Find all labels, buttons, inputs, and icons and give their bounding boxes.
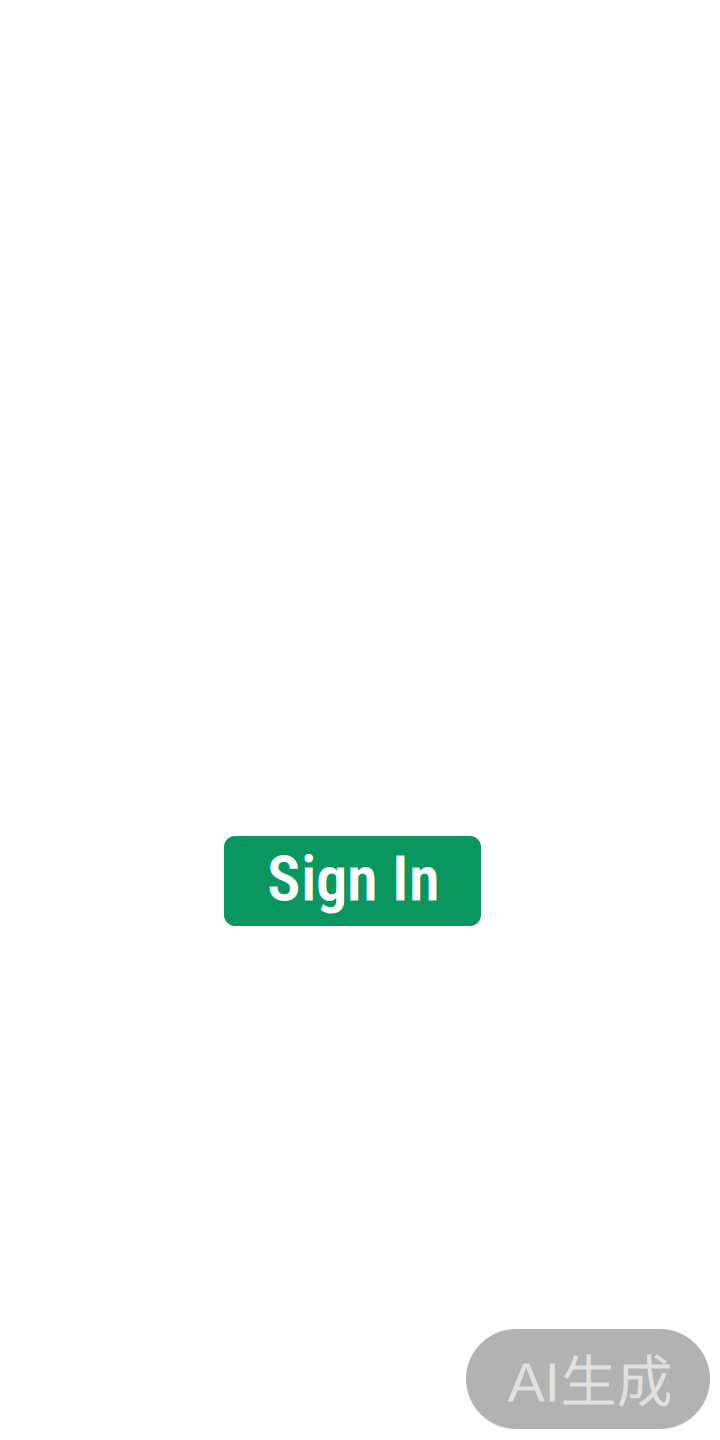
staticText: Sign In bbox=[267, 842, 440, 916]
staticText: AI生成 bbox=[507, 1337, 672, 1417]
button[interactable]: Sign In bbox=[224, 836, 481, 926]
